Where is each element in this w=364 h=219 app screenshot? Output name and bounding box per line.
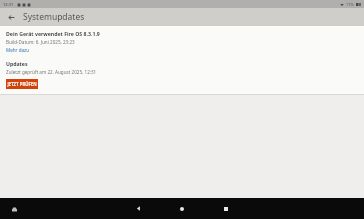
button[interactable]: Startbildschirm bbox=[171, 198, 193, 219]
staticText: Zuletzt geprüft am 22. August 2025, 12:3… bbox=[6, 69, 97, 75]
button[interactable]: JETZT PRÜFEN bbox=[6, 79, 38, 89]
button[interactable]: Zurück bbox=[127, 198, 149, 219]
staticText: Systemupdates bbox=[23, 11, 85, 23]
button[interactable]: Letzte Apps bbox=[215, 198, 237, 219]
staticText: Mehr dazu bbox=[6, 47, 30, 53]
staticText: Dein Gerät verwendet Fire OS 8.3.1.9 bbox=[6, 30, 100, 37]
button[interactable]: Zurück bbox=[5, 11, 17, 23]
staticText: JETZT PRÜFEN bbox=[7, 81, 37, 87]
staticText: Build-Datum: 6. Juni 2025, 23:23 bbox=[6, 39, 75, 45]
staticText: 17% bbox=[346, 2, 354, 7]
staticText: 12:31 bbox=[3, 2, 14, 7]
button[interactable]: Startseite bbox=[8, 203, 20, 215]
button[interactable]: Mehr dazu bbox=[6, 47, 30, 53]
staticText: Updates bbox=[6, 60, 28, 67]
